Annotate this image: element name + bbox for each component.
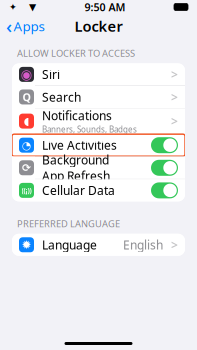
staticText: ◖ bbox=[23, 115, 29, 127]
staticText: ALLOW LOCKER TO ACCESS bbox=[17, 47, 135, 59]
staticText: Locker bbox=[74, 16, 122, 36]
staticText: Search bbox=[42, 89, 81, 105]
button[interactable]: ◖ bbox=[12, 109, 185, 134]
button[interactable]: ⟳ bbox=[12, 157, 185, 179]
staticText: > bbox=[171, 66, 178, 82]
button[interactable]: ((¡)) bbox=[12, 179, 185, 201]
button[interactable]: ◔ bbox=[12, 134, 185, 156]
staticText: PREFERRED LANGUAGE bbox=[17, 217, 120, 230]
staticText: English bbox=[123, 237, 163, 253]
staticText: > bbox=[171, 89, 178, 105]
staticText: ((¡)) bbox=[21, 186, 31, 195]
staticText: > bbox=[171, 113, 178, 129]
staticText: > bbox=[171, 237, 178, 253]
staticText: Background App Refresh bbox=[42, 152, 110, 184]
staticText: 9:50 AM bbox=[84, 0, 125, 14]
staticText: Notifications bbox=[42, 108, 112, 123]
staticText: ⟳ bbox=[22, 162, 31, 174]
staticText: Language bbox=[42, 237, 97, 253]
staticText: ✦ bbox=[9, 2, 17, 12]
button[interactable]: Q bbox=[12, 86, 185, 108]
staticText: Siri bbox=[42, 66, 60, 82]
staticText: ✹ bbox=[21, 238, 31, 252]
staticText: ‹ bbox=[6, 14, 12, 38]
staticText: Q bbox=[22, 90, 30, 104]
staticText: Apps bbox=[13, 17, 44, 35]
staticText: Live Activities bbox=[42, 137, 117, 153]
button[interactable]: ◉ bbox=[12, 63, 185, 85]
staticText: Banners, Sounds, Badges bbox=[42, 124, 137, 135]
button[interactable]: ‹ bbox=[0, 15, 50, 37]
staticText: ◉ bbox=[20, 67, 32, 82]
staticText: Cellular Data bbox=[42, 182, 115, 198]
staticText: ▼ bbox=[29, 2, 36, 12]
button[interactable]: ✹ bbox=[12, 234, 185, 256]
staticText: ◔ bbox=[22, 139, 31, 151]
